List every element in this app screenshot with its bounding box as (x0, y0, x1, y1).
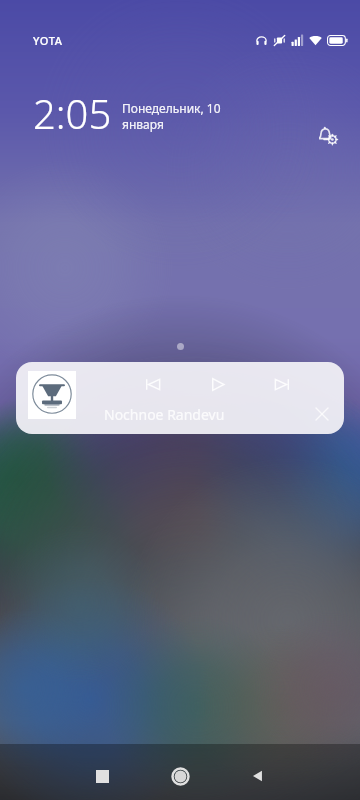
button[interactable]: Home (150, 752, 210, 800)
button[interactable]: Dismiss (308, 400, 336, 428)
staticText: YOTA (33, 33, 63, 48)
button[interactable]: Back (228, 752, 288, 800)
button[interactable]: Next track (267, 370, 297, 398)
staticText: Понедельник, 10 января (122, 100, 232, 132)
staticText: 2:05 (33, 86, 112, 140)
button[interactable]: Notification settings (310, 118, 346, 154)
button[interactable]: Previous track (16, 362, 344, 434)
staticText: Nochnoe Randevu (104, 405, 225, 424)
button[interactable]: Play (202, 370, 232, 398)
button[interactable]: Recent apps (72, 752, 132, 800)
button[interactable]: Previous track (137, 370, 167, 398)
